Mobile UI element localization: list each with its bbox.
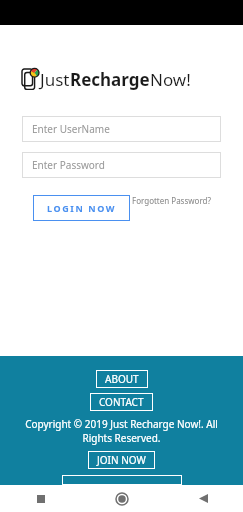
staticText: Recharge <box>70 68 150 91</box>
staticText: Just <box>40 68 70 91</box>
staticText: JOIN NOW <box>97 453 146 467</box>
staticText: Forgotten Password? <box>132 195 211 206</box>
button[interactable]: LOGIN NOW <box>33 195 130 221</box>
staticText: Enter UserName <box>32 122 110 136</box>
staticText: Copyright © 2019 Just Recharge Now!. All… <box>22 417 221 445</box>
button[interactable]: Back <box>188 485 218 512</box>
staticText: LOGIN NOW <box>47 202 117 214</box>
staticText: Enter Password <box>32 158 105 172</box>
staticText: ABOUT <box>105 372 139 386</box>
button[interactable]: JOIN NOW <box>88 451 155 469</box>
button[interactable]: Enter UserName <box>22 116 221 142</box>
button[interactable]: Recent apps <box>26 485 56 512</box>
button[interactable]: Home <box>107 485 137 512</box>
button[interactable]: CONTACT <box>90 393 153 411</box>
button[interactable]: Enter Password <box>22 152 221 178</box>
staticText: CONTACT <box>99 395 144 409</box>
staticText: Now! <box>150 68 191 91</box>
button[interactable]: ABOUT <box>96 370 148 388</box>
button[interactable] <box>62 475 182 485</box>
button[interactable]: Forgotten Password? <box>132 195 211 206</box>
